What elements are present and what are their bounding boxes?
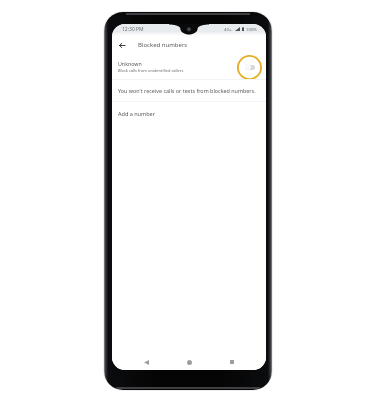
button[interactable]: Recent apps (225, 355, 239, 369)
staticText: Block calls from unidentified callers (118, 68, 184, 73)
staticText: 100% (246, 26, 257, 32)
staticText: Add a number (118, 110, 155, 117)
button[interactable]: Unknown (112, 54, 266, 79)
button[interactable]: Toggle block unknown callers (235, 54, 264, 79)
staticText: Blocked numbers (138, 41, 188, 49)
button[interactable]: Home (182, 355, 196, 369)
button[interactable]: Back (139, 355, 153, 369)
staticText: 12:30 PM (122, 26, 144, 33)
staticText: 4G+ (224, 26, 233, 32)
button[interactable]: You won't receive calls or texts from bl… (112, 80, 266, 101)
button[interactable]: Back (116, 39, 128, 51)
staticText: Unknown (118, 60, 142, 67)
staticText: You won't receive calls or texts from bl… (118, 87, 256, 94)
button[interactable]: Add a number (112, 102, 266, 125)
